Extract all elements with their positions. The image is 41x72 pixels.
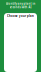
staticText: Identify any plant in (5, 2, 35, 5)
staticText: Choose your plan (7, 14, 34, 18)
staticText: seconds with AI (9, 5, 31, 9)
